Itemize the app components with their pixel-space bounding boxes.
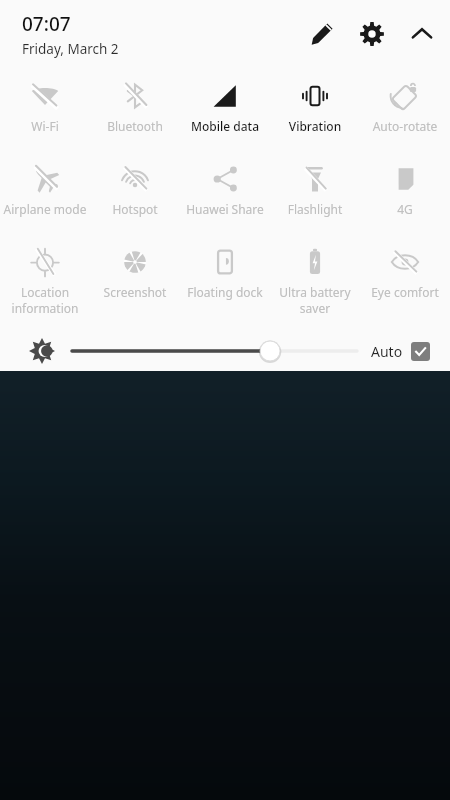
staticText: Location information [0, 284, 90, 316]
staticText: Flashlight [270, 201, 360, 217]
staticText: Screenshot [90, 284, 180, 300]
button[interactable]: Settings [352, 14, 392, 54]
staticText: Bluetooth [90, 118, 180, 134]
button[interactable]: Huawei Share [180, 157, 270, 240]
staticText: Auto-rotate [360, 118, 450, 134]
button[interactable]: Floating dock [180, 240, 270, 328]
button[interactable]: Auto [371, 342, 430, 361]
button[interactable]: Edit [302, 14, 342, 54]
button[interactable]: Location information [0, 240, 90, 328]
button[interactable]: Screenshot [90, 240, 180, 328]
button[interactable]: Hotspot [90, 157, 180, 240]
button[interactable]: Ultra battery saver [270, 240, 360, 328]
staticText: Mobile data [180, 118, 270, 134]
staticText: Auto [371, 342, 403, 361]
button[interactable]: Auto-rotate [360, 74, 450, 157]
staticText: Huawei Share [180, 201, 270, 217]
button[interactable]: Collapse [402, 14, 442, 54]
staticText: Friday, March 2 [22, 40, 119, 58]
button[interactable]: Vibration [270, 74, 360, 157]
staticText: Floating dock [180, 284, 270, 300]
button[interactable]: Wi-Fi [0, 74, 90, 157]
button[interactable]: Brightness [26, 335, 58, 367]
button[interactable]: Eye comfort [360, 240, 450, 328]
button[interactable]: Brightness slider [72, 335, 357, 367]
staticText: Vibration [270, 118, 360, 134]
staticText: Airplane mode [0, 201, 90, 217]
staticText: Wi-Fi [0, 118, 90, 134]
staticText: 4G [360, 201, 450, 217]
staticText: Ultra battery saver [270, 284, 360, 316]
button[interactable]: 4G [360, 157, 450, 240]
staticText: 07:07 [22, 11, 71, 37]
staticText: Hotspot [90, 201, 180, 217]
button[interactable]: Flashlight [270, 157, 360, 240]
button[interactable]: Airplane mode [0, 157, 90, 240]
button[interactable]: Bluetooth [90, 74, 180, 157]
button[interactable]: Mobile data [180, 74, 270, 157]
staticText: Eye comfort [360, 284, 450, 300]
